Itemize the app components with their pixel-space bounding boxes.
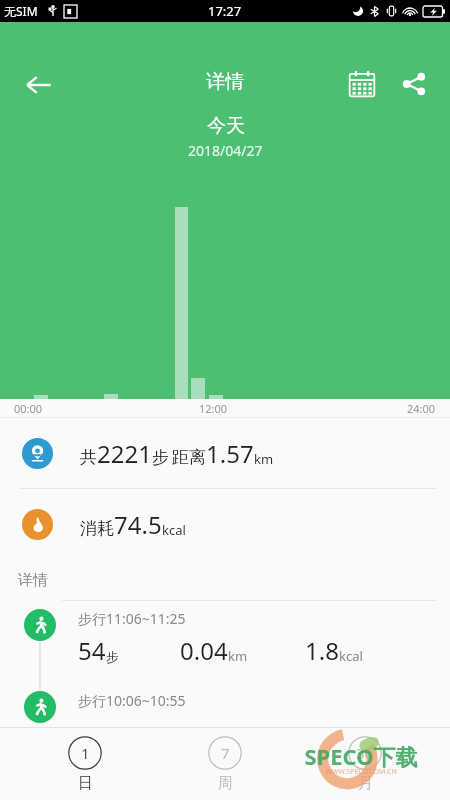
staticText: 1 (81, 743, 90, 763)
button[interactable]: 1 (30, 736, 140, 793)
button[interactable]: Share (392, 62, 436, 106)
staticText: 12:00 (199, 401, 228, 416)
staticText: 2221 (97, 437, 152, 470)
button[interactable]: Calendar (340, 62, 384, 106)
staticText: 0.04 (180, 634, 228, 667)
staticText: 7 (221, 743, 230, 763)
staticText: 日 (78, 774, 93, 793)
staticText: 无SIM (4, 3, 38, 19)
staticText: 详情 (206, 70, 244, 94)
staticText: 74.5 (114, 508, 162, 541)
staticText: 1.57 (206, 437, 254, 470)
staticText: 月 (358, 774, 373, 793)
staticText: 周 (218, 774, 233, 793)
staticText: 00:00 (14, 401, 43, 416)
staticText: km (228, 647, 248, 665)
staticText: 详情 (18, 571, 48, 590)
button[interactable]: 共 (0, 418, 450, 488)
staticText: WWW.SPECO.COM.CN (325, 767, 397, 777)
staticText: 1.8 (305, 634, 339, 667)
staticText: 30 (356, 743, 374, 763)
staticText: 消耗 (80, 518, 114, 539)
staticText: SPECO下载 (304, 741, 418, 771)
staticText: 今天 (207, 114, 245, 138)
staticText: 17:27 (208, 2, 242, 20)
staticText: km (254, 450, 274, 468)
button[interactable]: Back (16, 62, 62, 108)
staticText: 54 (78, 634, 106, 667)
staticText: 步行10:06~10:55 (78, 691, 186, 710)
staticText: 步 (152, 447, 169, 468)
button[interactable]: 7 (170, 736, 280, 793)
staticText: 2018/04/27 (188, 141, 263, 160)
staticText: 共 (80, 447, 97, 468)
button[interactable]: 消耗 (0, 489, 450, 559)
staticText: 24:00 (407, 401, 436, 416)
staticText: 步 (106, 649, 119, 665)
staticText: 距离 (172, 447, 206, 468)
staticText: 步行11:06~11:25 (78, 609, 186, 628)
button[interactable]: 30 (310, 736, 420, 793)
staticText: kcal (339, 647, 363, 665)
button[interactable]: 步行11:06~11:25 (0, 601, 450, 683)
button[interactable]: 步行10:06~10:55 (0, 683, 450, 741)
staticText: kcal (162, 521, 186, 539)
